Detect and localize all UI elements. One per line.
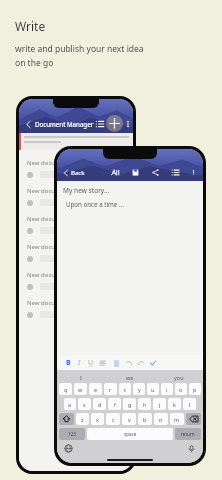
button[interactable]: New document [27,243,70,251]
button[interactable]: Document Manager [35,120,94,128]
staticText: w [78,386,83,393]
button[interactable]: v [122,413,136,425]
button[interactable]: e [89,383,102,395]
staticText: you [174,374,184,381]
button[interactable]: Change keyboard [63,443,74,454]
button[interactable]: x [91,413,104,425]
staticText: t [124,386,126,393]
button[interactable]: d [93,398,106,410]
staticText: 123 [68,431,76,437]
staticText: Write [15,18,46,34]
staticText: write and publish your next idea [15,43,144,55]
button[interactable]: Menu [127,118,129,130]
button[interactable]: U [85,357,96,368]
staticText: n [159,416,163,423]
staticText: space [124,431,137,437]
staticText: a [68,401,72,408]
button[interactable]: Align [98,358,108,368]
button[interactable]: Shift [59,413,74,425]
staticText: x [96,416,99,423]
button[interactable]: My new story... [63,186,110,195]
staticText: i [166,386,168,393]
button[interactable]: Back [61,168,86,178]
staticText: U [88,358,94,368]
button[interactable]: Share [150,167,161,178]
button[interactable]: Save [130,167,141,178]
button[interactable]: y [133,383,145,395]
staticText: j [159,401,161,408]
button[interactable]: return [175,428,201,440]
button[interactable]: Done [148,358,158,368]
button[interactable]: I [74,357,85,368]
button[interactable]: z [76,413,89,425]
button[interactable]: Back [23,119,34,130]
button[interactable]: i [161,383,173,395]
button[interactable]: Highlight [111,358,121,368]
button[interactable]: New document [27,215,70,223]
button[interactable]: I [57,372,105,383]
staticText: on the go [15,57,54,69]
staticText: h [143,401,147,408]
staticText: B [66,358,71,368]
staticText: o [179,386,183,393]
button[interactable]: c [106,413,120,425]
button[interactable]: Upon once a time ... [66,200,124,208]
button[interactable]: New document [27,187,70,195]
button[interactable]: you [154,372,203,383]
staticText: return [181,431,195,437]
staticText: z [81,416,84,423]
staticText: b [143,416,147,423]
button[interactable]: 123 [59,428,85,440]
staticText: e [94,386,98,393]
button[interactable]: t [119,383,131,395]
button[interactable]: j [153,398,166,410]
button[interactable]: u [147,383,159,395]
staticText: d [98,401,102,408]
staticText: l [189,401,191,408]
button[interactable]: m [170,413,184,425]
staticText: v [128,416,131,423]
button[interactable]: Redo [136,358,146,368]
button[interactable]: B [63,357,74,368]
staticText: I [80,374,82,381]
staticText: r [109,386,112,393]
button[interactable]: Backspace [186,413,201,425]
button[interactable]: r [104,383,117,395]
staticText: q [64,386,68,393]
button[interactable]: l [183,398,196,410]
button[interactable]: New document [27,159,70,167]
button[interactable]: n [154,413,168,425]
button[interactable]: b [138,413,152,425]
staticText: u [151,386,155,393]
button[interactable]: g [123,398,136,410]
button[interactable]: space [87,428,173,440]
staticText: we [126,374,134,381]
staticText: I [78,358,81,368]
staticText: f [114,401,116,408]
button[interactable]: New document [27,271,70,279]
button[interactable]: Undo [124,358,134,368]
button[interactable]: More options [189,168,198,177]
button[interactable]: p [189,383,201,395]
button[interactable]: Library [170,167,181,178]
staticText: g [128,401,132,408]
staticText: s [83,401,86,408]
staticText: p [193,386,197,393]
button[interactable]: o [175,383,187,395]
button[interactable]: s [78,398,91,410]
button[interactable]: Translate [110,167,121,178]
button[interactable]: h [138,398,151,410]
button[interactable]: a [64,398,76,410]
button[interactable]: Dictation [186,443,197,454]
button[interactable]: Add document [106,115,123,132]
staticText: c [112,416,115,423]
staticText: Back [71,169,85,177]
staticText: k [173,401,176,408]
button[interactable]: we [105,372,154,383]
button[interactable]: k [168,398,181,410]
button[interactable]: q [59,383,72,395]
button[interactable]: New document [27,299,70,307]
button[interactable]: List view [94,118,106,130]
button[interactable]: f [108,398,121,410]
button[interactable]: w [74,383,87,395]
